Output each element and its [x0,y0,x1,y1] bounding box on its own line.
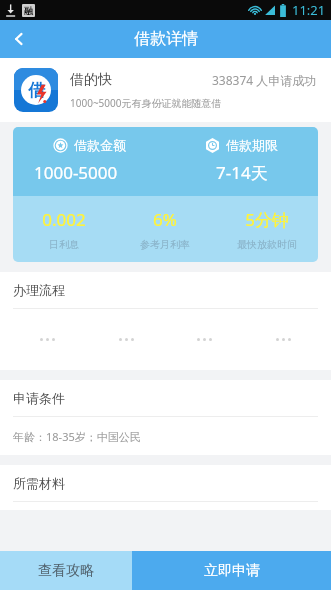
staticText: 办理流程 [13,282,65,298]
button[interactable]: 立即申请 [132,551,331,590]
staticText: 借的快 [70,71,112,89]
staticText: 11:21 [292,1,326,19]
staticText: 7-14天 [216,161,268,184]
staticText: 立即申请 [204,562,260,580]
staticText: 1000-5000 [34,161,118,184]
staticText: 融 [24,5,33,16]
button[interactable]: 借 [0,58,331,122]
staticText: 借款金额 [74,137,126,153]
staticText: 借款期限 [226,137,278,153]
button[interactable]: Back [0,20,38,58]
staticText: 6% [153,208,177,231]
staticText: 5分钟 [245,208,289,231]
staticText: 借款详情 [134,29,198,49]
staticText: 所需材料 [13,475,65,491]
staticText: 年龄：18-35岁；中国公民 [13,429,141,444]
staticText: 0.002 [42,208,86,231]
staticText: 最快放款时间 [237,238,297,251]
staticText: 日利息 [49,238,79,251]
staticText: 1000~5000元有身份证就能随意借 [70,96,222,110]
staticText: 参考月利率 [140,238,190,251]
staticText: 338374 人申请成功 [212,72,317,88]
button[interactable]: 查看攻略 [0,551,132,590]
staticText: 申请条件 [13,390,65,406]
staticText: 查看攻略 [38,562,94,580]
staticText: 借 [28,80,45,101]
